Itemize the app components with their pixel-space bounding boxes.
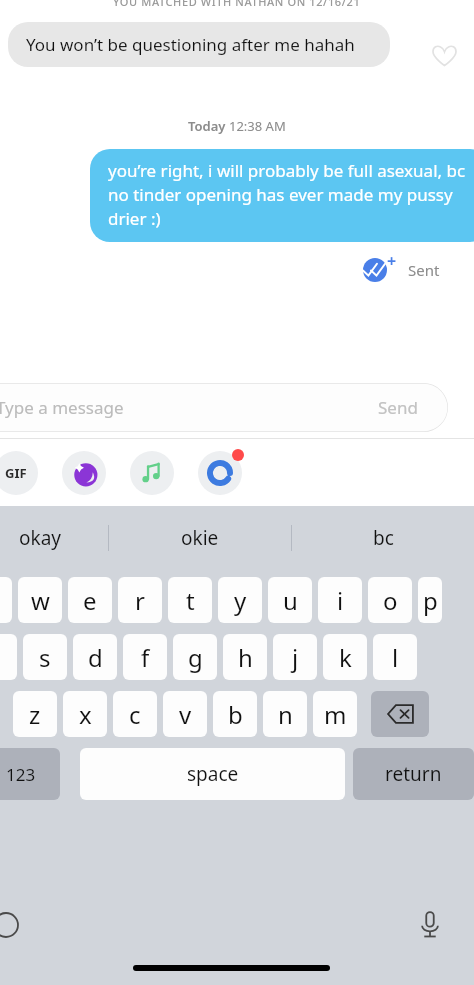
button[interactable]: l (373, 634, 417, 680)
staticText: s (39, 641, 51, 674)
staticText: 123 (6, 763, 36, 786)
staticText: o (383, 584, 398, 617)
button[interactable]: okay (0, 506, 108, 570)
button[interactable]: Dictation (408, 903, 452, 947)
staticText: GIF (5, 464, 27, 482)
button[interactable]: You won’t be questioning after me hahah (8, 22, 390, 67)
staticText: d (88, 641, 103, 674)
button[interactable]: u (268, 577, 312, 623)
staticText: e (83, 584, 97, 617)
button[interactable]: Type a message (0, 383, 448, 432)
staticText: w (31, 584, 50, 617)
staticText: Send (378, 396, 418, 419)
staticText: g (188, 641, 203, 674)
button[interactable]: e (68, 577, 112, 623)
staticText: f (141, 641, 150, 674)
button[interactable]: c (113, 691, 157, 737)
button[interactable]: m (313, 691, 357, 737)
button[interactable]: z (13, 691, 57, 737)
staticText: v (179, 698, 192, 731)
button[interactable]: bc (292, 506, 474, 570)
staticText: u (283, 584, 298, 617)
button[interactable]: a (0, 634, 17, 680)
button[interactable]: Attachment app (0, 451, 38, 495)
button[interactable]: n (263, 691, 307, 737)
staticText: k (339, 641, 352, 674)
button[interactable]: b (213, 691, 257, 737)
button[interactable]: g (173, 634, 217, 680)
staticText: YOU MATCHED WITH NATHAN ON 12/16/21 (113, 0, 361, 9)
button[interactable]: h (223, 634, 267, 680)
button[interactable]: o (368, 577, 412, 623)
button[interactable]: space (80, 748, 345, 800)
button[interactable]: t (168, 577, 212, 623)
button[interactable]: Emoji keyboard (0, 903, 28, 947)
staticText: okay (19, 525, 61, 551)
staticText: Sent (408, 260, 440, 280)
staticText: 12:38 AM (229, 117, 286, 135)
staticText: You won’t be questioning after me hahah (26, 33, 355, 56)
staticText: y (234, 584, 247, 617)
button[interactable]: d (73, 634, 117, 680)
staticText: you’re right, i will probably be full as… (108, 159, 472, 230)
staticText: space (187, 761, 239, 787)
button[interactable]: you’re right, i will probably be full as… (90, 149, 474, 242)
staticText: bc (373, 525, 394, 551)
staticText: l (392, 641, 399, 674)
staticText: + (387, 250, 397, 272)
staticText: m (324, 698, 347, 731)
staticText: return (385, 761, 442, 787)
staticText: p (423, 584, 438, 617)
button[interactable]: p (418, 577, 442, 623)
staticText: r (135, 584, 145, 617)
button[interactable]: q (0, 577, 12, 623)
button[interactable]: f (123, 634, 167, 680)
button[interactable]: j (273, 634, 317, 680)
button[interactable]: i (318, 577, 362, 623)
staticText: Type a message (0, 396, 124, 419)
staticText: t (186, 584, 195, 617)
button[interactable]: Backspace (371, 691, 429, 737)
staticText: i (337, 584, 344, 617)
button[interactable]: w (18, 577, 62, 623)
button[interactable]: Like message (426, 38, 462, 74)
button[interactable]: Attachment app (62, 451, 106, 495)
staticText: Today (188, 117, 229, 135)
button[interactable]: Attachment app (130, 451, 174, 495)
staticText: okie (181, 525, 219, 551)
staticText: h (238, 641, 253, 674)
button[interactable]: x (63, 691, 107, 737)
button[interactable]: okie (109, 506, 291, 570)
staticText: c (129, 698, 141, 731)
staticText: x (79, 698, 92, 731)
staticText: b (228, 698, 243, 731)
button[interactable]: r (118, 577, 162, 623)
button[interactable]: Attachment app (198, 451, 242, 495)
button[interactable]: k (323, 634, 367, 680)
button[interactable]: v (163, 691, 207, 737)
button[interactable]: y (218, 577, 262, 623)
button[interactable]: return (353, 748, 474, 800)
button[interactable]: s (23, 634, 67, 680)
button[interactable]: 123 (0, 748, 60, 800)
staticText: j (292, 641, 299, 674)
staticText: n (278, 698, 293, 731)
staticText: z (29, 698, 41, 731)
